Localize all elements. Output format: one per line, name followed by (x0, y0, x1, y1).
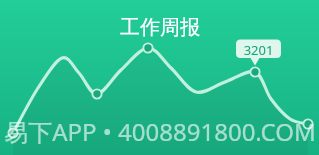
staticText: 3201 (236, 41, 281, 155)
button[interactable]: 工作周报 (0, 15, 319, 155)
staticText: 易下APP • 4008891800.COM (4, 115, 316, 148)
button[interactable]: 3201 (236, 41, 281, 155)
other: Weekly work report chart (0, 0, 319, 155)
staticText: 工作周报 (120, 15, 200, 40)
